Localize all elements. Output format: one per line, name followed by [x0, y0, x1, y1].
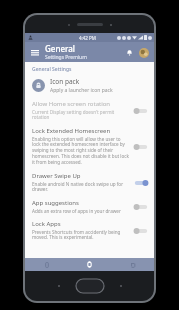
staticText: App suggestions — [32, 199, 79, 207]
staticText: Enabling this option will allow the user… — [32, 136, 129, 166]
staticText: 4:42 PM — [79, 35, 96, 41]
button[interactable]: Toggle off — [133, 226, 149, 236]
staticText: Lock Extended Homescreen — [32, 127, 111, 135]
button[interactable]: Account — [137, 46, 150, 59]
staticText: General Settings — [32, 66, 72, 73]
button[interactable]: Resize — [111, 258, 154, 271]
staticText: Current Display setting doesn't permit r… — [32, 109, 129, 121]
button[interactable]: Open navigation menu — [29, 46, 41, 58]
button[interactable]: App suggestions — [25, 196, 154, 217]
staticText: Drawer Swipe Up — [32, 172, 81, 180]
button[interactable]: Toggle off — [133, 106, 149, 116]
button[interactable]: Allow Home screen rotation — [25, 97, 154, 124]
button[interactable]: Toggle off — [133, 142, 149, 152]
staticText: Settings Premium — [45, 54, 87, 61]
button[interactable]: Lock Extended Homescreen — [25, 124, 154, 169]
button[interactable]: Toggle on — [133, 178, 149, 188]
button[interactable]: Icon pack — [25, 75, 154, 97]
button[interactable]: Watch — [68, 258, 111, 271]
staticText: Enable android N native dock swipe up fo… — [32, 181, 129, 193]
button[interactable]: Lock Apps — [25, 217, 154, 244]
button[interactable]: Drawer Swipe Up — [25, 169, 154, 196]
staticText: Lock Apps — [32, 220, 61, 228]
staticText: Adds an extra row of apps in your drawer — [32, 208, 121, 214]
staticText: Prevents Shortcuts from accidently being… — [32, 229, 129, 241]
button[interactable]: Toggle off — [133, 202, 149, 212]
staticText: Apply a launcher icon pack — [50, 87, 113, 94]
staticText: Allow Home screen rotation — [32, 100, 111, 108]
staticText: Icon pack — [50, 77, 80, 86]
staticText: General — [45, 43, 75, 54]
button[interactable]: Notifications — [123, 46, 136, 59]
